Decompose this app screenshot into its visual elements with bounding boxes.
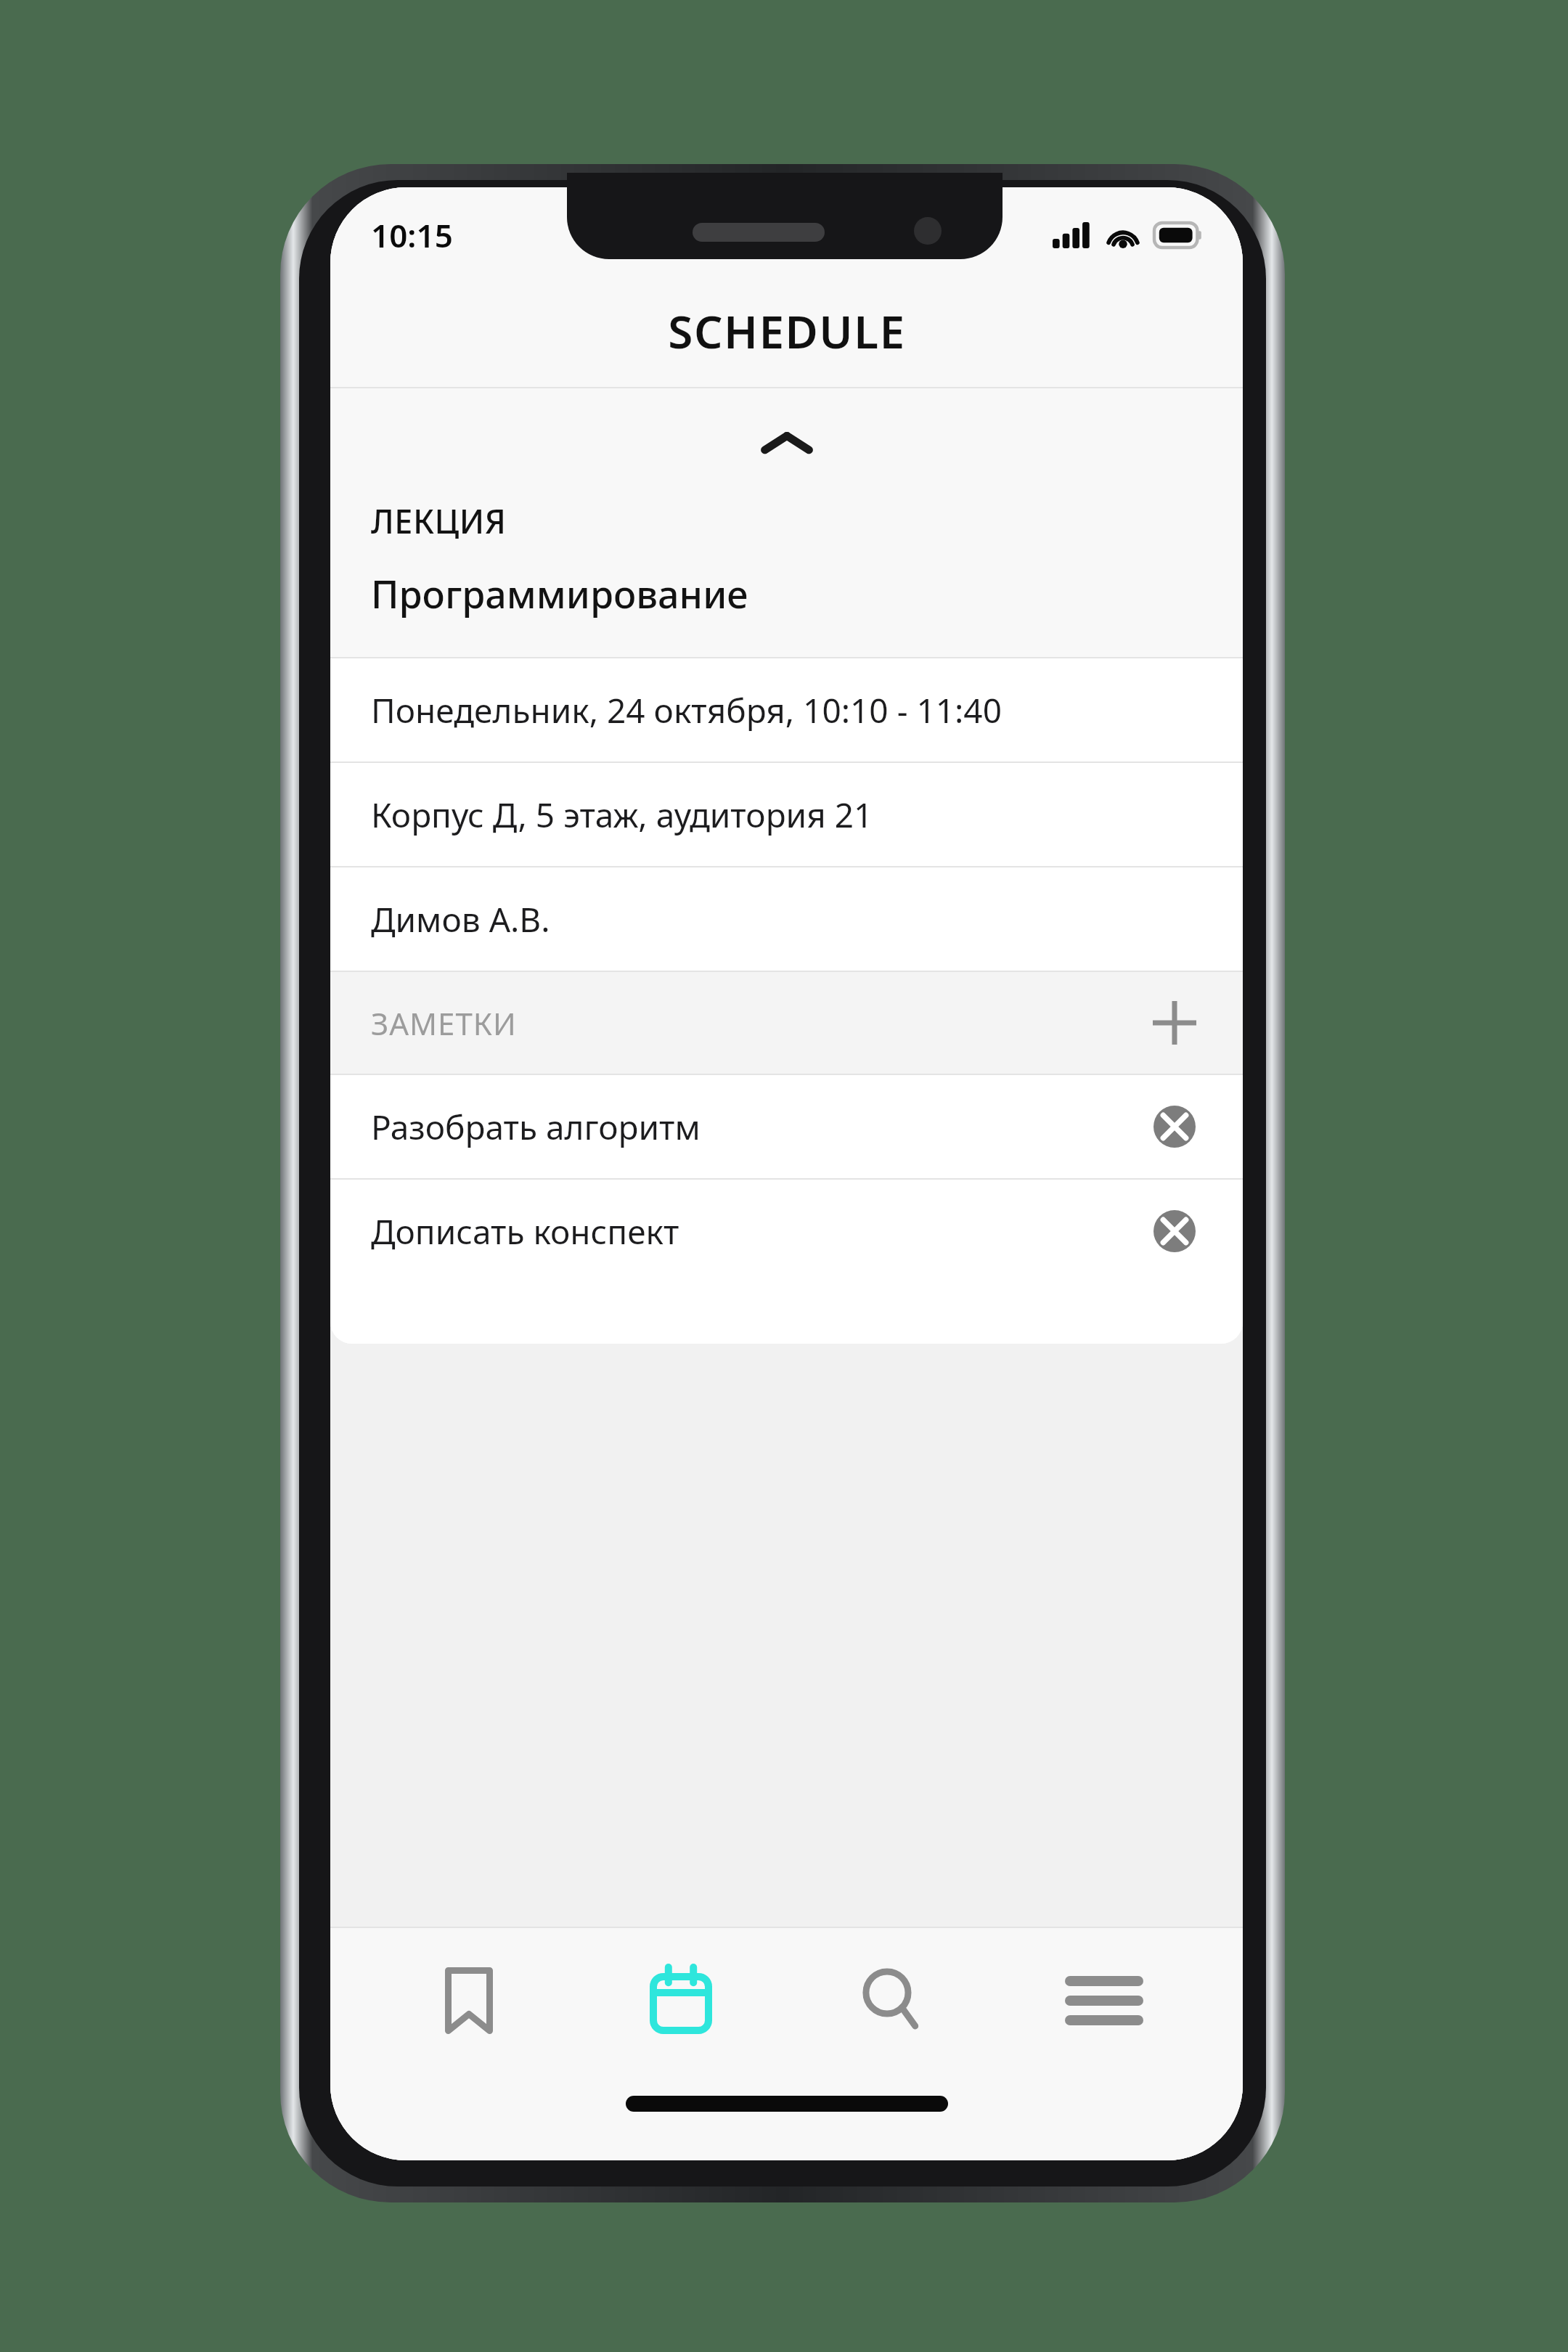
staticText: SCHEDULE <box>668 301 906 362</box>
staticText: Разобрать алгоритм <box>371 1104 1141 1150</box>
button[interactable]: Delete note <box>1141 1093 1208 1160</box>
staticText: Дописать конспект <box>371 1209 1141 1254</box>
staticText: Димов А.В. <box>371 897 550 942</box>
staticText: ЛЕКЦИЯ <box>371 499 507 543</box>
button[interactable]: Разобрать алгоритм <box>330 1075 1243 1178</box>
button[interactable]: Delete note <box>1141 1198 1208 1265</box>
staticText: Программирование <box>371 568 748 619</box>
button[interactable]: Schedule <box>608 1928 754 2073</box>
button[interactable]: Корпус Д, 5 этаж, аудитория 21 <box>330 763 1243 866</box>
button[interactable]: Collapse <box>330 388 1243 499</box>
staticText: Понедельник, 24 октября, 10:10 - 11:40 <box>371 687 1002 733</box>
button[interactable]: Понедельник, 24 октября, 10:10 - 11:40 <box>330 658 1243 761</box>
button[interactable]: Add note <box>1140 988 1209 1058</box>
button[interactable]: Димов А.В. <box>330 867 1243 971</box>
staticText: Корпус Д, 5 этаж, аудитория 21 <box>371 792 873 838</box>
staticText: ЗАМЕТКИ <box>371 1003 1140 1044</box>
staticText: 10:15 <box>371 213 453 257</box>
button[interactable]: Bookmarks <box>396 1928 542 2073</box>
button[interactable]: Search <box>820 1928 965 2073</box>
button[interactable]: Дописать конспект <box>330 1180 1243 1283</box>
button[interactable]: Menu <box>1032 1928 1177 2073</box>
